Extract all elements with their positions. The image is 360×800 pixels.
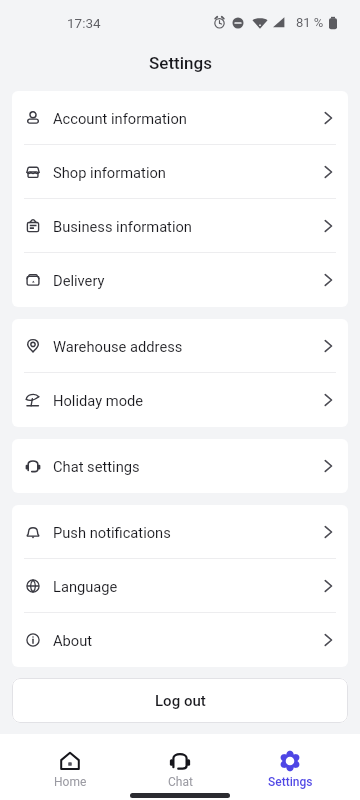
button[interactable]: Push notifications xyxy=(12,505,348,559)
button[interactable]: Chat xyxy=(125,750,235,789)
staticText: 81 % xyxy=(296,15,324,30)
staticText: Push notifications xyxy=(53,524,171,541)
button[interactable]: Home xyxy=(15,750,125,789)
button[interactable]: Account information xyxy=(12,91,348,145)
staticText: 17:34 xyxy=(67,15,101,31)
button[interactable]: Holiday mode xyxy=(12,373,348,427)
staticText: Settings xyxy=(149,53,212,73)
staticText: Warehouse address xyxy=(53,338,183,355)
button[interactable]: Settings xyxy=(235,750,345,789)
other: Home xyxy=(59,750,81,772)
button[interactable]: Shop information xyxy=(12,145,348,199)
button[interactable]: Business information xyxy=(12,199,348,253)
button[interactable]: Chat settings xyxy=(12,439,348,493)
staticText: Delivery xyxy=(53,272,105,289)
other: Settings xyxy=(279,750,301,772)
staticText: Holiday mode xyxy=(53,392,144,409)
staticText: Log out xyxy=(155,692,206,710)
staticText: Shop information xyxy=(53,164,166,181)
button[interactable]: Log out xyxy=(12,678,348,723)
button[interactable]: Warehouse address xyxy=(12,319,348,373)
staticText: Chat settings xyxy=(53,458,140,475)
button[interactable]: Language xyxy=(12,559,348,613)
staticText: Business information xyxy=(53,218,192,235)
staticText: Chat xyxy=(168,775,193,789)
button[interactable]: About xyxy=(12,613,348,667)
staticText: Home xyxy=(54,775,87,789)
button[interactable]: Delivery xyxy=(12,253,348,307)
staticText: Language xyxy=(53,578,118,595)
staticText: About xyxy=(53,632,93,649)
staticText: Settings xyxy=(268,775,313,789)
staticText: Account information xyxy=(53,110,187,127)
other: Chat xyxy=(169,750,191,772)
